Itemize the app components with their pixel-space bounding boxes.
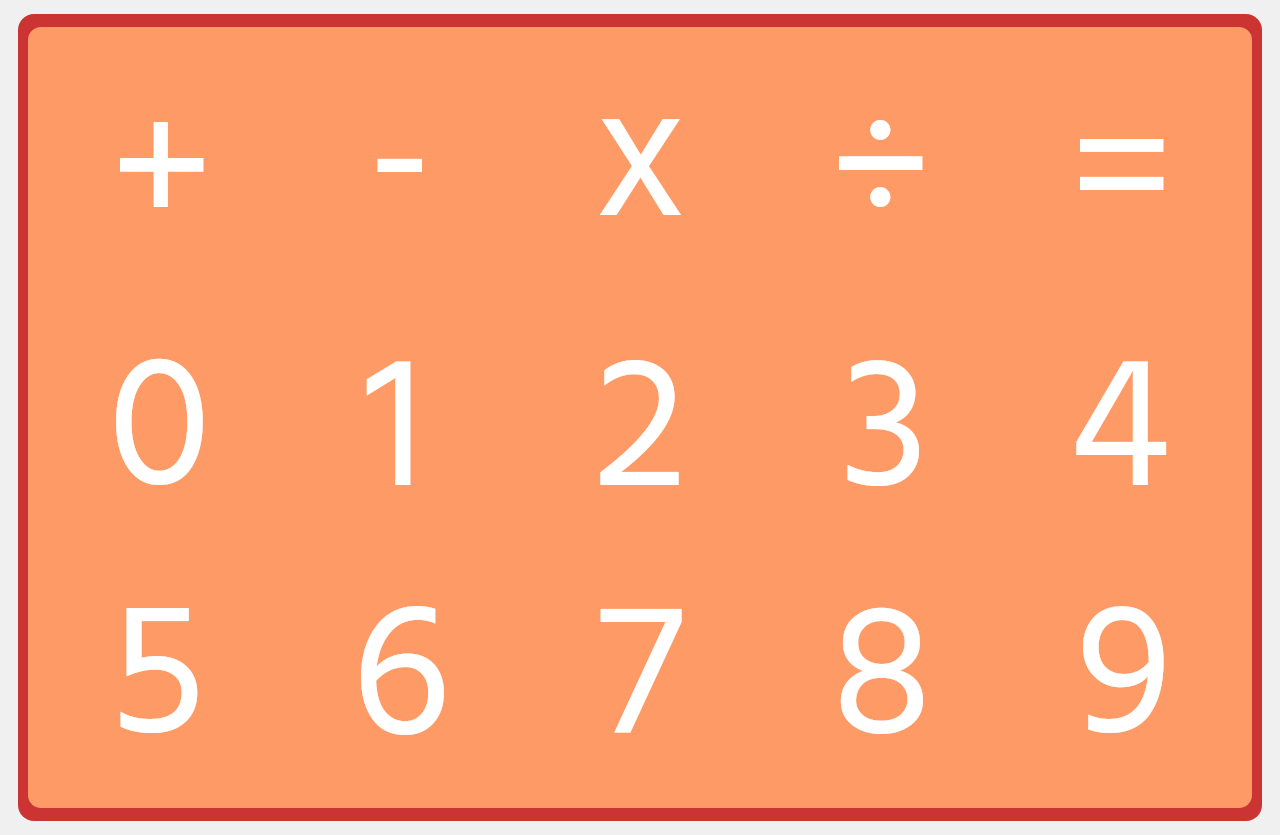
staticText: 2: [593, 286, 687, 538]
staticText: 6: [351, 534, 451, 786]
staticText: x: [595, 27, 686, 269]
button[interactable]: Seven: [520, 544, 760, 796]
button[interactable]: Three: [760, 292, 1000, 544]
button[interactable]: Eight: [760, 544, 1000, 796]
staticText: 7: [598, 533, 684, 785]
staticText: 0: [108, 284, 211, 536]
staticText: 1: [363, 286, 425, 538]
staticText: =: [1069, 30, 1174, 283]
staticText: +: [109, 30, 214, 283]
button[interactable]: Two: [520, 292, 760, 544]
staticText: 5: [109, 532, 206, 784]
button[interactable]: Equals: [1000, 39, 1240, 292]
button[interactable]: Multiply: [520, 39, 760, 292]
staticText: ÷: [828, 29, 933, 282]
staticText: 3: [840, 286, 929, 538]
staticText: -: [367, 27, 433, 270]
button[interactable]: Nine: [1000, 544, 1240, 796]
button[interactable]: Plus: [40, 39, 280, 292]
staticText: 8: [831, 533, 933, 785]
button[interactable]: Six: [280, 544, 520, 796]
staticText: 4: [1068, 286, 1171, 538]
button[interactable]: Minus: [280, 39, 520, 292]
button[interactable]: Four: [1000, 292, 1240, 544]
button[interactable]: Five: [40, 544, 280, 796]
button[interactable]: Zero: [40, 292, 280, 544]
button[interactable]: One: [280, 292, 520, 544]
button[interactable]: Divide: [760, 39, 1000, 292]
staticText: 9: [1076, 532, 1172, 784]
